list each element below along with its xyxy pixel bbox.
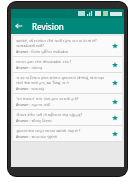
staticText: સરકાર દ્વારા કરેલ યોજનાઓમાં કયા ?	[16, 59, 72, 64]
button[interactable]: ૧૯૭૨ માં વિશ્વના પ્રથમ સંમેલન ગુજરાતમાં …	[13, 73, 122, 93]
button[interactable]: ગુજરાતમાંનાં સરહદ ભાગમાં આવેલો કોણ છે ?	[13, 126, 122, 141]
staticText: Answer : બંધારણ	[16, 65, 43, 70]
staticText: 'કેમ ભગવાન' શબ્દ કોનાં દ્વારા વપરાયો હતો…	[16, 96, 79, 101]
button[interactable]: Favourite	[110, 97, 120, 107]
staticText: Revision	[32, 21, 64, 32]
button[interactable]: Favourite	[110, 78, 120, 88]
staticText: ગુજરાતમાંનાં સરહદ ભાગમાં આવેલો કોણ છે ?	[16, 128, 81, 133]
staticText: Answer : મહાત્મા ગાંધી	[16, 102, 50, 107]
button[interactable]: Favourite	[110, 60, 120, 70]
staticText: અત્યારે, વર્ષ દરમ્યાન નીચે ચાલી રહેલા કા…	[16, 38, 107, 48]
button[interactable]: ગીતાના શ્લોક પછી નો ભૂમિકામાં કોણ રહ્યું…	[13, 110, 122, 125]
button[interactable]: Back	[11, 18, 27, 34]
button[interactable]: સરકાર દ્વારા કરેલ યોજનાઓમાં કયા ?	[13, 57, 122, 72]
staticText: Answer : સાબરકાંઠા જીલ્લો	[16, 134, 58, 139]
button[interactable]: Favourite	[110, 41, 120, 51]
staticText: Answer : નિયમ પુસ્તિકા સ્પર્ધાઓનાં	[16, 49, 69, 54]
staticText: Answer : જળવાયું	[16, 86, 44, 91]
staticText: ગીતાના શ્લોક પછી નો ભૂમિકામાં કોણ રહ્યું…	[16, 112, 82, 117]
staticText: ૧૯૭૨ માં વિશ્વના પ્રથમ સંમેલન ગુજરાતમાં …	[16, 75, 107, 85]
button[interactable]: Favourite	[110, 113, 120, 123]
staticText: Answer : સૌરાષ્ટ્ર વિસ્તાર	[16, 118, 53, 123]
button[interactable]: Favourite	[110, 129, 120, 139]
button[interactable]: 'કેમ ભગવાન' શબ્દ કોનાં દ્વારા વપરાયો હતો…	[13, 94, 122, 109]
button[interactable]: અત્યારે, વર્ષ દરમ્યાન નીચે ચાલી રહેલા કા…	[13, 36, 122, 56]
